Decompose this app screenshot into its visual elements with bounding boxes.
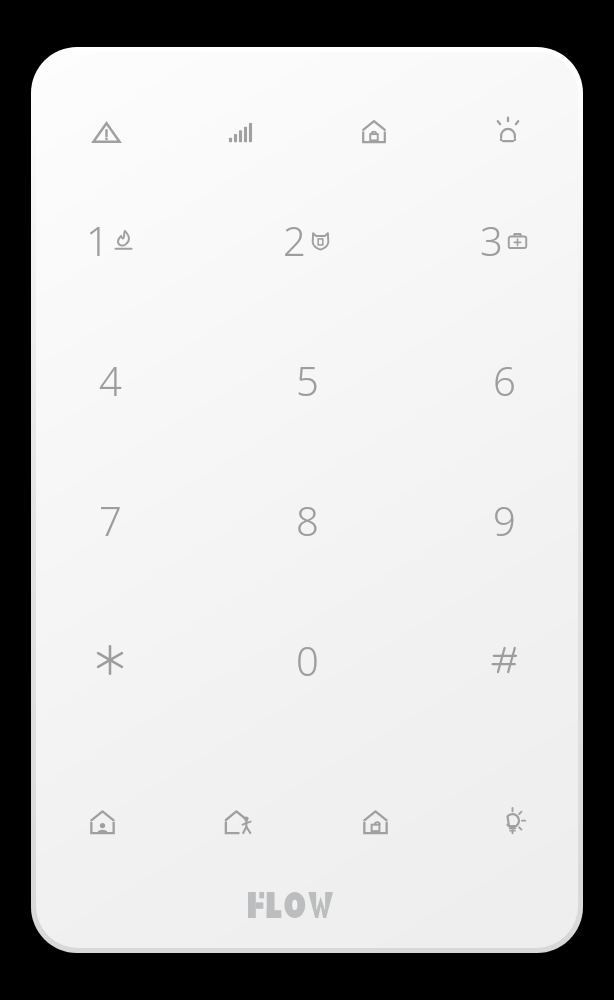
button[interactable]: One, fire alarm [54, 200, 166, 280]
button[interactable]: 8 [251, 480, 363, 560]
button[interactable]: Siren status [460, 96, 556, 168]
button[interactable]: Disarm [327, 786, 423, 858]
staticText: 8 [296, 493, 319, 547]
staticText: 1 [86, 213, 109, 267]
button[interactable]: System armed [326, 96, 422, 168]
button[interactable]: 0 [251, 620, 363, 700]
button[interactable]: 5 [251, 340, 363, 420]
button[interactable]: Star [54, 620, 166, 700]
staticText: 3 [480, 213, 503, 267]
staticText: 9 [493, 493, 516, 547]
staticText: 5 [296, 353, 319, 407]
button[interactable]: Arm stay [54, 786, 150, 858]
button[interactable]: Lights [464, 786, 560, 858]
button[interactable]: 4 [54, 340, 166, 420]
staticText: 4 [99, 353, 122, 407]
button[interactable]: 7 [54, 480, 166, 560]
button[interactable]: Signal strength [192, 96, 288, 168]
button[interactable]: 9 [448, 480, 560, 560]
button[interactable]: Arm away [191, 786, 287, 858]
button[interactable]: 6 [448, 340, 560, 420]
staticText: 2 [283, 213, 306, 267]
button[interactable]: Hash [448, 620, 560, 700]
staticText: 7 [99, 493, 122, 547]
staticText: 0 [296, 633, 319, 687]
button[interactable]: Three, medical alarm [448, 200, 560, 280]
button[interactable]: Fault warning [58, 96, 154, 168]
staticText: 6 [493, 353, 516, 407]
button[interactable]: Two, police alarm [251, 200, 363, 280]
